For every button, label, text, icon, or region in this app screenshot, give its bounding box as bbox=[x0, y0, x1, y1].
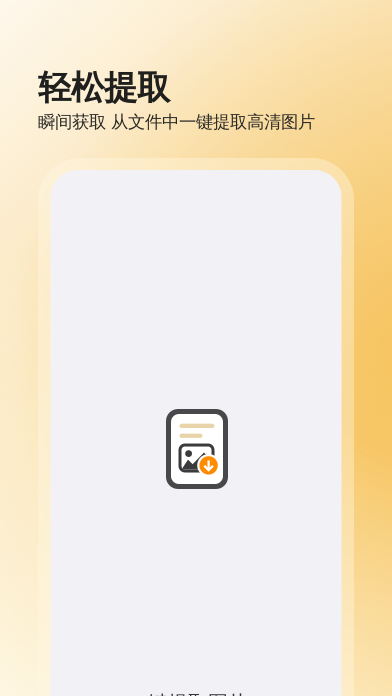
staticText: 一键提取图片 bbox=[128, 691, 248, 696]
button[interactable]: 一键提取图片 bbox=[88, 691, 288, 696]
staticText: 瞬间获取 从文件中一键提取高清图片 bbox=[38, 111, 315, 133]
staticText: 轻松提取 bbox=[38, 67, 170, 108]
